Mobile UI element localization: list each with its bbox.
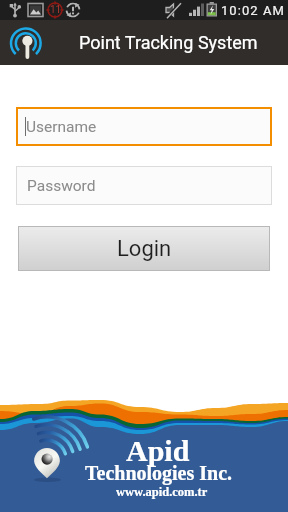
staticText: 11 [50,4,62,16]
staticText: Apid [126,434,190,467]
staticText: Password [27,177,96,195]
staticText: Login [117,236,172,262]
staticText: Technologies Inc. [85,462,233,484]
other: Apid logo [0,396,288,512]
other: App logo [0,20,288,65]
staticText: Point Tracking System [79,32,258,53]
button[interactable]: Username [16,107,272,146]
button[interactable]: Password [16,166,272,205]
button[interactable]: Login [18,226,270,271]
staticText: Username [26,118,97,136]
staticText: www.apid.com.tr [116,485,208,499]
staticText: 10:02 AM [221,3,285,18]
